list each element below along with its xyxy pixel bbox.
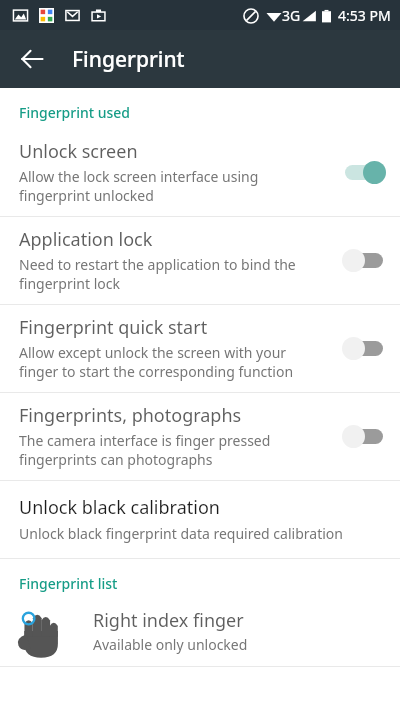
staticText: Application lock	[19, 227, 153, 252]
button[interactable]	[340, 157, 388, 187]
staticText: Fingerprint quick start	[19, 315, 208, 340]
button[interactable]: Back	[8, 35, 56, 83]
staticText: Unlock screen	[19, 139, 138, 164]
staticText: The camera interface is finger pressed f…	[19, 431, 271, 469]
staticText: Unlock black fingerprint data required c…	[19, 524, 343, 543]
staticText: Fingerprints, photographs	[19, 403, 242, 428]
button[interactable]: Fingerprints, photographs	[0, 393, 400, 480]
button[interactable]: Fingerprint quick start	[0, 305, 400, 392]
staticText: Right index finger	[93, 608, 244, 633]
staticText: 3G	[282, 6, 301, 25]
button[interactable]: Unlock screen	[0, 129, 400, 216]
staticText: Available only unlocked	[93, 635, 248, 654]
staticText: Unlock black calibration	[19, 495, 220, 520]
staticText: Fingerprint used	[19, 103, 131, 122]
staticText: Need to restart the application to bind …	[19, 255, 296, 293]
button[interactable]: Application lock	[0, 217, 400, 304]
staticText: Fingerprint list	[19, 574, 118, 593]
button[interactable]: Right index finger	[0, 600, 400, 666]
staticText: Fingerprint	[72, 45, 185, 74]
button[interactable]	[340, 333, 388, 363]
button[interactable]	[340, 421, 388, 451]
button[interactable]: Unlock black calibration	[0, 481, 400, 558]
staticText: Allow the lock screen interface using fi…	[19, 167, 259, 205]
staticText: Allow except unlock the screen with your…	[19, 343, 294, 381]
staticText: 4:53 PM	[338, 6, 391, 25]
button[interactable]	[340, 245, 388, 275]
